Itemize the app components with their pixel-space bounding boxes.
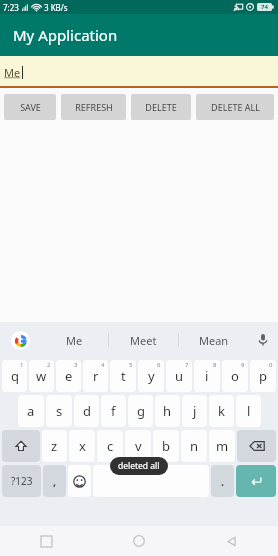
staticText: 7 (185, 361, 189, 369)
button[interactable]: d (74, 395, 99, 427)
button[interactable]: s (46, 395, 72, 427)
button[interactable]: Backspace (237, 430, 276, 462)
button[interactable]: p (250, 360, 276, 392)
button[interactable]: Mean (179, 322, 248, 358)
button[interactable]: o (222, 360, 248, 392)
staticText: r (93, 367, 99, 385)
staticText: g (137, 402, 145, 420)
staticText: . (221, 474, 225, 489)
button[interactable]: h (155, 395, 180, 427)
button[interactable]: y (138, 360, 164, 392)
button[interactable]: DELETE (131, 94, 191, 120)
staticText: SAVE (20, 101, 41, 113)
staticText: 74 (261, 3, 268, 11)
staticText: l (247, 402, 251, 420)
staticText: u (175, 367, 184, 385)
button[interactable]: f (101, 395, 126, 427)
button[interactable]: Enter (236, 465, 276, 497)
button[interactable]: Meet (109, 322, 178, 358)
button[interactable]: Period (211, 465, 234, 497)
staticText: i (205, 367, 209, 385)
staticText: z (51, 437, 58, 455)
staticText: Me (4, 65, 21, 80)
staticText: deleted all (118, 460, 160, 472)
button[interactable]: z (42, 430, 67, 462)
staticText: v (135, 437, 142, 455)
button[interactable]: Recents (0, 526, 92, 556)
button[interactable]: u (166, 360, 192, 392)
button[interactable]: r (83, 360, 108, 392)
staticText: s (56, 402, 63, 420)
staticText: DELETE ALL (211, 101, 260, 113)
staticText: t (121, 367, 126, 385)
staticText: , (53, 474, 57, 489)
staticText: w (36, 367, 47, 385)
staticText: k (218, 402, 225, 420)
staticText: q (11, 367, 19, 385)
staticText: m (216, 437, 229, 455)
staticText: 9 (241, 361, 245, 369)
button[interactable]: Emoji (68, 465, 91, 497)
staticText: REFRESH (75, 101, 113, 113)
button[interactable]: q (2, 360, 27, 392)
staticText: 6 (157, 361, 161, 369)
button[interactable]: m (209, 430, 235, 462)
staticText: 4 (101, 361, 105, 369)
staticText: 2 (47, 361, 51, 369)
staticText: c (107, 437, 114, 455)
button[interactable]: Voice input (248, 322, 278, 358)
staticText: Meet (130, 333, 157, 348)
button[interactable]: DELETE ALL (196, 94, 274, 120)
button[interactable]: Me (0, 56, 278, 88)
staticText: b (162, 437, 170, 455)
button[interactable]: t (110, 360, 136, 392)
staticText: j (193, 402, 197, 420)
staticText: a (27, 402, 35, 420)
button[interactable]: Home (92, 526, 185, 556)
button[interactable]: Back (185, 526, 278, 556)
staticText: My Application (13, 25, 118, 45)
button[interactable]: g (128, 395, 153, 427)
staticText: 3 (74, 361, 78, 369)
staticText: Me (66, 333, 83, 348)
button[interactable]: x (69, 430, 95, 462)
button[interactable]: ?123 (2, 465, 41, 497)
staticText: 3 KB/s (44, 2, 68, 13)
staticText: 0 (269, 361, 273, 369)
staticText: p (259, 367, 267, 385)
button[interactable]: l (236, 395, 261, 427)
staticText: o (231, 367, 239, 385)
button[interactable]: n (181, 430, 207, 462)
staticText: 1 (20, 361, 24, 369)
button[interactable]: a (18, 395, 44, 427)
button[interactable]: Space (93, 465, 209, 497)
button[interactable]: c (97, 430, 123, 462)
button[interactable]: v (125, 430, 151, 462)
staticText: ?123 (11, 474, 33, 488)
button[interactable]: k (209, 395, 234, 427)
button[interactable]: i (194, 360, 220, 392)
button[interactable]: Me (40, 322, 108, 358)
staticText: x (79, 437, 86, 455)
staticText: h (163, 402, 172, 420)
button[interactable]: REFRESH (61, 94, 126, 120)
staticText: d (83, 402, 91, 420)
staticText: 7:23 (3, 2, 19, 13)
staticText: DELETE (145, 101, 177, 113)
button[interactable]: Shift (2, 430, 40, 462)
staticText: 8 (213, 361, 217, 369)
button[interactable]: SAVE (4, 94, 56, 120)
button[interactable]: w (29, 360, 54, 392)
button[interactable]: Google (0, 322, 40, 358)
staticText: e (65, 367, 73, 385)
staticText: 5 (129, 361, 133, 369)
button[interactable]: Comma (43, 465, 66, 497)
button[interactable]: e (56, 360, 81, 392)
button[interactable]: j (182, 395, 207, 427)
staticText: y (148, 367, 155, 385)
button[interactable]: b (153, 430, 179, 462)
staticText: Mean (199, 333, 229, 348)
staticText: f (111, 402, 116, 420)
staticText: n (190, 437, 199, 455)
